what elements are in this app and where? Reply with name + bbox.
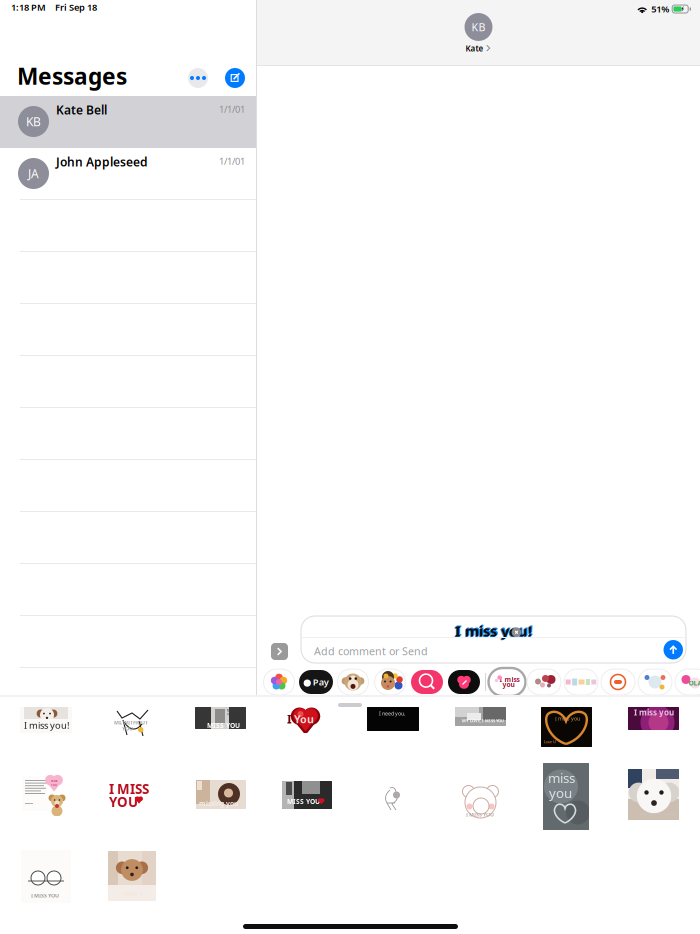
button[interactable]: iMessage app	[446, 668, 482, 696]
staticText: Kate Bell	[56, 102, 107, 118]
staticText: Pay	[313, 676, 329, 688]
staticText: I MISS	[109, 780, 149, 798]
button[interactable]: iMessage app	[563, 668, 599, 696]
button[interactable]: iMessage app	[372, 668, 408, 696]
staticText: 1/1/01	[219, 103, 245, 115]
button[interactable]: iMessage app	[489, 668, 525, 696]
button[interactable]: Show app drawer	[271, 643, 288, 660]
button[interactable]: Sticker	[541, 707, 592, 747]
staticText: I MISS YOU	[466, 811, 494, 818]
button[interactable]: Sticker	[196, 780, 246, 809]
button[interactable]: Sticker	[282, 781, 332, 809]
staticText: I miss you	[555, 715, 580, 722]
staticText: miss	[548, 769, 575, 787]
staticText: I miss	[499, 675, 519, 684]
staticText: I miss you!	[24, 719, 70, 731]
staticText: I need you.	[379, 710, 405, 717]
staticText: you	[549, 784, 572, 802]
button[interactable]: Sticker	[367, 707, 419, 731]
button[interactable]: Sticker	[109, 780, 157, 807]
button[interactable]: Sticker	[22, 774, 71, 816]
button[interactable]: Sticker	[459, 772, 502, 819]
button[interactable]: More options	[188, 68, 208, 88]
staticText: KB	[471, 20, 485, 34]
staticText: Kate	[465, 43, 483, 54]
button[interactable]: Sticker	[108, 851, 156, 901]
button[interactable]: Sticker	[628, 769, 679, 820]
button[interactable]: Sticker	[112, 706, 155, 739]
staticText: MY LOVE, I MISS YOU	[462, 718, 504, 723]
staticText: KB	[26, 113, 41, 129]
staticText: 51%	[651, 3, 669, 15]
staticText: JA	[28, 165, 39, 181]
button[interactable]: Send	[663, 640, 683, 659]
staticText: MISS	[51, 779, 57, 783]
button[interactable]: iMessage app	[409, 668, 445, 696]
staticText: John Appleseed	[56, 154, 148, 170]
staticText: MISS YOU	[287, 797, 320, 806]
button[interactable]: iMessage app	[526, 668, 562, 696]
staticText: you	[502, 680, 514, 689]
staticText: Maybe it's true	[227, 709, 240, 716]
staticText: I	[287, 711, 292, 727]
button[interactable]: JA	[0, 148, 257, 200]
staticText: 1:18 PM	[11, 1, 46, 13]
staticText: YOU	[109, 793, 138, 811]
button[interactable]: Sticker	[195, 707, 246, 729]
staticText: ME WITHOUT	[114, 719, 148, 726]
button[interactable]: iMessage app	[261, 668, 297, 696]
staticText: 1/1/01	[219, 155, 245, 167]
button[interactable]: iMessage app	[600, 668, 636, 696]
button[interactable]: Compose new message	[225, 68, 245, 88]
staticText: You	[294, 712, 314, 726]
button[interactable]: Sticker	[284, 707, 325, 733]
staticText: MISS YOU	[207, 721, 240, 730]
staticText: I miss you!	[456, 620, 533, 640]
staticText: Add comment or Send	[314, 644, 428, 658]
button[interactable]: iMessage app	[637, 668, 673, 696]
staticText: YOU	[51, 783, 57, 787]
button[interactable]: Sticker	[20, 707, 72, 733]
button[interactable]: Sticker	[455, 707, 506, 726]
staticText: Fri Sep 18	[55, 1, 97, 13]
button[interactable]: Sticker	[628, 707, 679, 730]
staticText: YOU	[122, 725, 133, 732]
button[interactable]: Sticker	[21, 850, 71, 903]
button[interactable]: KB	[0, 96, 257, 148]
staticText: I miss you!	[454, 622, 531, 641]
staticText: I miss you!	[455, 621, 532, 640]
button[interactable]: Sticker	[382, 783, 404, 813]
button[interactable]: iMessage app	[298, 668, 334, 696]
staticText: I MISS YOU	[31, 892, 59, 899]
button[interactable]: iMessage app	[674, 668, 700, 696]
button[interactable]: Sticker	[543, 763, 589, 830]
staticText: I miss you	[634, 707, 674, 718]
staticText: OLA	[688, 679, 700, 687]
staticText: Love U	[544, 739, 556, 744]
staticText: Messages	[17, 61, 127, 91]
staticText: missing you	[199, 799, 238, 808]
staticText: miss you so much	[639, 811, 676, 816]
button[interactable]: iMessage app	[335, 668, 371, 696]
button[interactable]: Kate Bell details	[464, 0, 492, 54]
